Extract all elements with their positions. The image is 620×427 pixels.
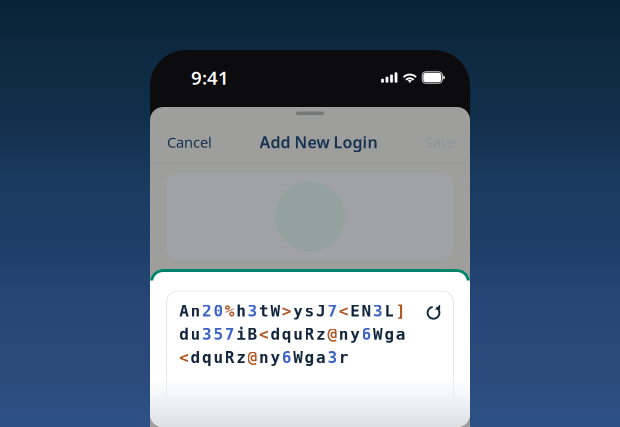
staticText: N	[362, 302, 372, 320]
staticText: h	[236, 302, 246, 320]
staticText: n	[259, 348, 269, 366]
staticText: u	[293, 325, 303, 343]
button[interactable]: Cancel	[167, 126, 212, 158]
staticText: i	[236, 325, 246, 343]
staticText: z	[316, 325, 326, 343]
staticText: ]	[396, 302, 406, 320]
staticText: @	[248, 348, 258, 366]
button[interactable]: Save	[425, 126, 456, 158]
staticText: Save	[425, 132, 456, 152]
staticText: d	[179, 325, 189, 343]
staticText: 3	[327, 348, 337, 366]
staticText: W	[270, 302, 280, 320]
staticText: a	[396, 325, 406, 343]
staticText: B	[248, 325, 258, 343]
staticText: q	[202, 348, 212, 366]
staticText: E	[350, 302, 360, 320]
staticText: y	[350, 325, 360, 343]
staticText: <	[259, 325, 269, 343]
staticText: d	[270, 325, 280, 343]
staticText: y	[293, 302, 303, 320]
staticText: R	[305, 325, 315, 343]
staticText: 6	[362, 325, 372, 343]
staticText: 0	[213, 302, 223, 320]
staticText: W	[373, 325, 383, 343]
staticText: 3	[248, 302, 258, 320]
staticText: a	[316, 348, 326, 366]
staticText: d	[191, 348, 201, 366]
staticText: 3	[202, 325, 212, 343]
staticText: L	[384, 302, 394, 320]
staticText: A	[179, 302, 189, 320]
staticText: u	[191, 325, 201, 343]
staticText: 9:41	[191, 65, 229, 90]
staticText: n	[191, 302, 201, 320]
staticText: 7	[327, 302, 337, 320]
staticText: >	[282, 302, 292, 320]
staticText: g	[305, 348, 315, 366]
staticText: 3	[373, 302, 383, 320]
staticText: W	[293, 348, 303, 366]
staticText: 2	[202, 302, 212, 320]
staticText: <	[179, 348, 189, 366]
staticText: Cancel	[167, 132, 212, 152]
staticText: y	[270, 348, 280, 366]
staticText: r	[339, 348, 349, 366]
staticText: g	[384, 325, 394, 343]
staticText: t	[259, 302, 269, 320]
staticText: q	[282, 325, 292, 343]
staticText: R	[225, 348, 235, 366]
staticText: z	[236, 348, 246, 366]
staticText: 6	[282, 348, 292, 366]
staticText: s	[305, 302, 315, 320]
button[interactable]: Regenerate password	[423, 302, 444, 323]
staticText: n	[339, 325, 349, 343]
staticText: @	[327, 325, 337, 343]
staticText: 5	[213, 325, 223, 343]
staticText: 7	[225, 325, 235, 343]
staticText: u	[213, 348, 223, 366]
staticText: Add New Login	[259, 131, 377, 153]
staticText: J	[316, 302, 326, 320]
staticText: %	[225, 302, 235, 320]
staticText: <	[339, 302, 349, 320]
